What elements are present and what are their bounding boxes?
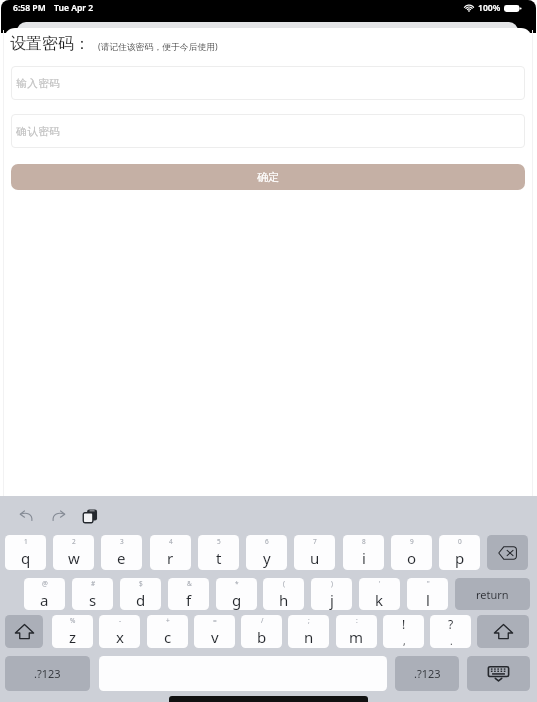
staticText: : bbox=[356, 616, 358, 625]
staticText: 7 bbox=[313, 537, 317, 546]
staticText: = bbox=[213, 616, 217, 625]
button[interactable]: Redo bbox=[42, 502, 74, 530]
staticText: b bbox=[257, 627, 267, 647]
button[interactable]: Undo bbox=[10, 502, 42, 530]
staticText: s bbox=[89, 590, 97, 610]
staticText: o bbox=[407, 548, 417, 568]
button[interactable]: 4 bbox=[150, 535, 191, 570]
button[interactable]: 确认密码 bbox=[11, 114, 525, 148]
staticText: 6:58 PM bbox=[13, 2, 46, 14]
button[interactable]: ; bbox=[288, 615, 329, 648]
button[interactable]: ! bbox=[383, 615, 424, 648]
staticText: h bbox=[279, 590, 289, 610]
button[interactable]: return bbox=[455, 578, 530, 610]
button[interactable]: % bbox=[52, 615, 93, 648]
staticText: # bbox=[91, 579, 96, 588]
button[interactable]: 5 bbox=[198, 535, 239, 570]
button[interactable]: 2 bbox=[53, 535, 94, 570]
button[interactable]: Hide keyboard bbox=[467, 656, 530, 691]
staticText: @ bbox=[42, 579, 48, 588]
button[interactable]: ' bbox=[359, 578, 400, 610]
staticText: .?123 bbox=[414, 666, 441, 681]
staticText: f bbox=[186, 590, 192, 610]
button[interactable]: ( bbox=[263, 578, 304, 610]
staticText: 6 bbox=[265, 537, 269, 546]
button[interactable]: " bbox=[407, 578, 448, 610]
button[interactable]: 9 bbox=[391, 535, 432, 570]
staticText: ( bbox=[283, 579, 285, 588]
button[interactable]: 3 bbox=[101, 535, 142, 570]
staticText: a bbox=[40, 590, 49, 610]
button[interactable]: Shift bbox=[5, 615, 43, 648]
staticText: 3 bbox=[120, 537, 124, 546]
staticText: 2 bbox=[72, 537, 76, 546]
staticText: 100% bbox=[478, 2, 501, 14]
staticText: e bbox=[117, 548, 126, 568]
button[interactable]: & bbox=[168, 578, 209, 610]
staticText: m bbox=[349, 627, 364, 647]
staticText: k bbox=[375, 590, 384, 610]
button[interactable]: $ bbox=[120, 578, 161, 610]
button[interactable]: Paste bbox=[74, 502, 106, 530]
staticText: ) bbox=[331, 579, 333, 588]
button[interactable]: = bbox=[194, 615, 235, 648]
button[interactable]: 确定 bbox=[11, 164, 525, 190]
button[interactable]: 7 bbox=[294, 535, 335, 570]
staticText: Tue Apr 2 bbox=[54, 2, 94, 14]
staticText: l bbox=[426, 590, 430, 610]
button[interactable]: 6 bbox=[246, 535, 287, 570]
staticText: & bbox=[187, 579, 192, 588]
staticText: j bbox=[330, 590, 334, 610]
staticText: 0 bbox=[458, 537, 462, 546]
staticText: return bbox=[476, 587, 509, 602]
button[interactable]: .?123 bbox=[5, 656, 90, 691]
staticText: .?123 bbox=[34, 666, 61, 681]
staticText: " bbox=[427, 579, 430, 588]
button[interactable]: Backspace bbox=[487, 535, 528, 570]
staticText: ! bbox=[402, 616, 406, 632]
staticText: . bbox=[450, 634, 453, 648]
staticText: i bbox=[362, 548, 366, 568]
button[interactable]: + bbox=[147, 615, 188, 648]
button[interactable]: 1 bbox=[5, 535, 46, 570]
button[interactable]: 输入密码 bbox=[11, 66, 525, 100]
button[interactable]: * bbox=[216, 578, 257, 610]
staticText: ? bbox=[448, 616, 454, 632]
button[interactable]: .?123 bbox=[395, 656, 459, 691]
staticText: 8 bbox=[362, 537, 366, 546]
staticText: * bbox=[235, 579, 239, 588]
button[interactable]: Shift bbox=[477, 615, 529, 648]
staticText: w bbox=[68, 548, 80, 568]
staticText: - bbox=[119, 616, 122, 625]
button[interactable]: 8 bbox=[343, 535, 384, 570]
staticText: z bbox=[69, 627, 77, 647]
staticText: u bbox=[310, 548, 320, 568]
button[interactable]: 0 bbox=[439, 535, 480, 570]
button[interactable]: # bbox=[72, 578, 113, 610]
staticText: v bbox=[211, 627, 219, 647]
staticText: g bbox=[232, 590, 242, 610]
staticText: 输入密码 bbox=[16, 77, 60, 90]
button[interactable]: ) bbox=[311, 578, 352, 610]
button[interactable]: : bbox=[336, 615, 377, 648]
button[interactable]: ? bbox=[430, 615, 471, 648]
staticText: 4 bbox=[169, 537, 173, 546]
staticText: r bbox=[167, 548, 174, 568]
staticText: ' bbox=[379, 579, 381, 588]
button[interactable]: / bbox=[241, 615, 282, 648]
button[interactable]: - bbox=[99, 615, 140, 648]
staticText: 确认密码 bbox=[16, 125, 60, 138]
staticText: 9 bbox=[410, 537, 414, 546]
staticText: $ bbox=[139, 579, 143, 588]
staticText: % bbox=[70, 616, 76, 625]
staticText: q bbox=[21, 548, 31, 568]
staticText: + bbox=[166, 616, 170, 625]
staticText: t bbox=[216, 548, 222, 568]
staticText: y bbox=[263, 548, 271, 568]
staticText: ; bbox=[308, 616, 310, 625]
staticText: n bbox=[304, 627, 314, 647]
staticText: / bbox=[261, 616, 264, 625]
staticText: 设置密码： bbox=[10, 34, 90, 53]
button[interactable]: @ bbox=[24, 578, 65, 610]
